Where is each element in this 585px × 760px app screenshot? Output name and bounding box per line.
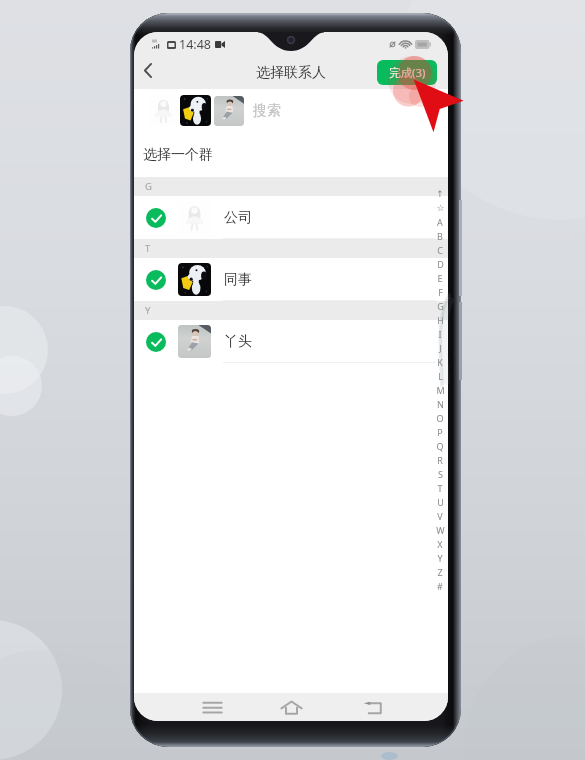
staticText: 选择联系人 (256, 64, 326, 82)
staticText: K (437, 356, 443, 368)
staticText: L (438, 370, 443, 382)
staticText: J (439, 342, 442, 354)
button[interactable]: 公司 (134, 196, 448, 239)
staticText: B (437, 230, 443, 242)
staticText: P (437, 426, 443, 438)
staticText: 14:48 (179, 36, 211, 53)
staticText: G (437, 300, 444, 312)
staticText: # (437, 580, 443, 592)
button[interactable]: Recents (193, 695, 231, 719)
staticText: W (436, 524, 445, 536)
staticText: C (437, 244, 443, 256)
staticText: N (437, 398, 444, 410)
staticText: Y (145, 304, 151, 317)
button[interactable]: Back (134, 56, 164, 89)
button[interactable]: 同事 (134, 258, 448, 301)
button[interactable]: 完成(3) (377, 60, 437, 85)
staticText: H (437, 314, 444, 326)
staticText: 同事 (224, 271, 252, 289)
staticText: F (438, 286, 443, 298)
button[interactable]: 搜索 (134, 89, 448, 132)
staticText: 完成(3) (389, 65, 426, 81)
staticText: I (438, 328, 442, 340)
staticText: ↑ (436, 189, 444, 199)
staticText: T (145, 242, 151, 255)
staticText: 选择一个群 (143, 146, 213, 164)
staticText: V (437, 510, 443, 522)
staticText: ☆ (436, 203, 445, 213)
staticText: Y (437, 552, 443, 564)
button[interactable]: Home (272, 695, 310, 719)
staticText: S (438, 468, 443, 480)
staticText: 公司 (224, 209, 252, 227)
staticText: A (437, 216, 443, 228)
staticText: T (437, 482, 443, 494)
staticText: 丫头 (224, 333, 252, 351)
staticText: O (436, 412, 444, 424)
staticText: Z (437, 566, 443, 578)
staticText: E (437, 272, 443, 284)
staticText: 搜索 (253, 102, 281, 120)
staticText: U (437, 496, 444, 508)
staticText: X (437, 538, 443, 550)
staticText: Q (436, 440, 444, 452)
staticText: M (436, 384, 445, 396)
button[interactable]: 丫头 (134, 320, 448, 363)
staticText: R (437, 454, 443, 466)
staticText: G (145, 180, 152, 193)
button[interactable]: Back (353, 695, 391, 719)
staticText: D (437, 258, 444, 270)
